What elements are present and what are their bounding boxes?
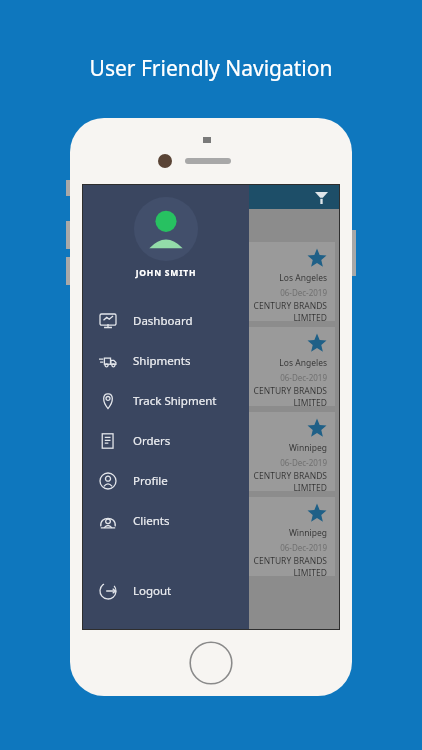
- button[interactable]: Orders: [83, 421, 249, 461]
- staticText: Winnipeg: [288, 527, 327, 539]
- staticText: 06-Dec-2019: [280, 287, 327, 298]
- button[interactable]: Winnipeg: [87, 412, 335, 491]
- staticText: Logout: [133, 583, 172, 599]
- button[interactable]: Winnipeg: [87, 497, 335, 576]
- button[interactable]: Filter: [311, 187, 331, 207]
- staticText: CENTURY BRANDS LIMITED: [253, 300, 327, 321]
- button[interactable]: Profile: [83, 461, 249, 501]
- button[interactable]: Dashboard: [83, 301, 249, 341]
- staticText: Track Shipment: [133, 393, 217, 409]
- button[interactable]: Los Angeles: [87, 327, 335, 406]
- staticText: CENTURY BRANDS LIMITED: [253, 385, 327, 406]
- staticText: Los Angeles: [279, 357, 327, 369]
- staticText: Shipments: [133, 353, 191, 369]
- staticText: 06-Dec-2019: [280, 372, 327, 383]
- button[interactable]: Clients: [83, 501, 249, 541]
- staticText: FAVOURITES: [93, 218, 152, 230]
- staticText: Winnipeg: [288, 442, 327, 454]
- staticText: Clients: [133, 513, 170, 529]
- button[interactable]: Logout: [83, 571, 249, 611]
- staticText: JOHN SMITH: [83, 267, 249, 279]
- staticText: 06-Dec-2019: [280, 457, 327, 468]
- staticText: Orders: [133, 433, 171, 449]
- staticText: User Friendly Navigation: [0, 54, 422, 83]
- button[interactable]: Los Angeles: [87, 242, 335, 321]
- staticText: CENTURY BRANDS LIMITED: [253, 470, 327, 491]
- staticText: Dashboard: [133, 313, 193, 329]
- button[interactable]: Track Shipment: [83, 381, 249, 421]
- staticText: 06-Dec-2019: [280, 542, 327, 553]
- staticText: Los Angeles: [279, 272, 327, 284]
- staticText: CENTURY BRANDS LIMITED: [253, 555, 327, 576]
- staticText: Profile: [133, 473, 168, 489]
- button[interactable]: Shipments: [83, 341, 249, 381]
